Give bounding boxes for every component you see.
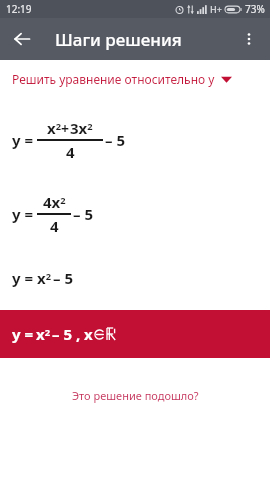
staticText: – 5 — [73, 204, 93, 224]
staticText: Шаги решения — [55, 28, 182, 51]
staticText: 3x2 — [70, 118, 93, 138]
staticText: x2 — [47, 118, 61, 138]
staticText: – 5 , — [52, 324, 81, 344]
button[interactable]: Решить уравнение относительно y — [0, 60, 270, 98]
staticText: y = — [12, 130, 34, 150]
staticText: x2 — [36, 324, 50, 344]
button[interactable]: y = — [0, 310, 270, 358]
button[interactable]: Back — [4, 21, 40, 57]
staticText: + — [61, 119, 70, 138]
staticText: x — [84, 324, 93, 344]
staticText: y = — [12, 324, 34, 344]
staticText: 73% — [245, 2, 265, 16]
button[interactable]: More options — [231, 21, 267, 57]
staticText: 12:19 — [6, 2, 32, 16]
staticText: 4x2 — [43, 192, 66, 212]
staticText: Это решение подошло? — [72, 388, 199, 403]
staticText: – 5 — [105, 130, 125, 150]
staticText: – 5 — [53, 268, 73, 288]
staticText: x2 — [37, 268, 51, 288]
staticText: 4 — [50, 216, 59, 236]
staticText: H+ — [210, 3, 222, 15]
staticText: 4 — [66, 142, 75, 162]
staticText: y = — [12, 204, 34, 224]
staticText: Решить уравнение относительно y — [12, 71, 215, 87]
staticText: y = — [12, 268, 34, 288]
button[interactable]: Это решение подошло? — [0, 388, 270, 403]
